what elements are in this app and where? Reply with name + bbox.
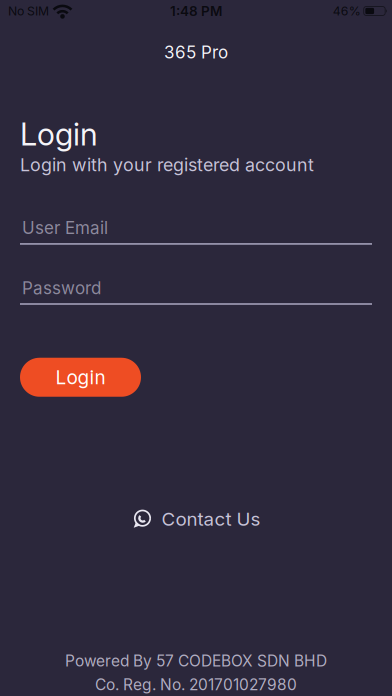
button[interactable]: Login — [20, 358, 141, 397]
staticText: Login — [20, 116, 98, 153]
staticText: Co. Reg. No. 201701027980 — [95, 675, 297, 694]
button[interactable]: Password — [20, 278, 372, 305]
button[interactable]: User Email — [20, 218, 372, 245]
staticText: 1:48 PM — [170, 3, 222, 19]
staticText: Password — [22, 278, 101, 298]
staticText: User Email — [22, 218, 108, 238]
staticText: 46% — [333, 4, 361, 18]
staticText: 365 Pro — [164, 42, 228, 63]
staticText: No SIM — [8, 4, 49, 18]
button[interactable]: Contact Us — [131, 508, 260, 530]
staticText: Login — [55, 366, 105, 389]
staticText: Login with your registered account — [20, 154, 314, 176]
staticText: Powered By 57 CODEBOX SDN BHD — [65, 651, 327, 670]
staticText: Contact Us — [161, 508, 260, 530]
